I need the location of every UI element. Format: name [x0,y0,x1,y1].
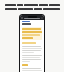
button[interactable] [22,28,42,39]
button[interactable] [3,4,61,10]
button[interactable]: Phone preview [19,14,45,72]
